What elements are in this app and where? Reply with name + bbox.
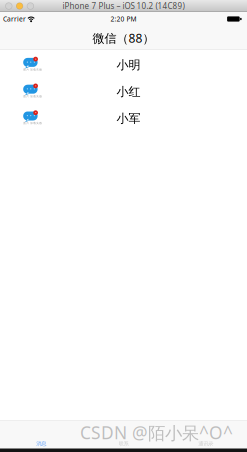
button[interactable]: 图片 加载失败 (0, 105, 247, 132)
staticText: 图片 加载失败 (23, 121, 42, 125)
staticText: 小军 (116, 111, 140, 126)
staticText: 联系 (118, 440, 128, 447)
staticText: 消息 (36, 440, 46, 447)
staticText: 小明 (116, 58, 140, 72)
staticText: 2:20 PM (110, 15, 136, 23)
button[interactable]: 通讯录 (165, 420, 247, 448)
staticText: 通讯录 (198, 440, 213, 447)
button[interactable]: 图片 加载失败 (0, 78, 247, 105)
button[interactable]: 图片 加载失败 (0, 52, 247, 78)
staticText: Carrier (3, 15, 26, 23)
staticText: iPhone 7 Plus – iOS 10.2 (14C89) (62, 1, 184, 11)
button[interactable]: Zoom window (27, 3, 34, 9)
button[interactable]: Minimise window (16, 3, 23, 9)
button[interactable]: Close window (5, 3, 12, 9)
staticText: 小红 (116, 84, 140, 99)
button[interactable]: 联系 (82, 420, 165, 448)
staticText: 图片 加载失败 (23, 95, 42, 98)
button[interactable]: 消息 (0, 420, 82, 448)
staticText: 图片 加载失败 (23, 68, 42, 71)
staticText: CSDN @陌小呆^O^ (80, 421, 233, 444)
staticText: 微信（88） (92, 30, 154, 46)
